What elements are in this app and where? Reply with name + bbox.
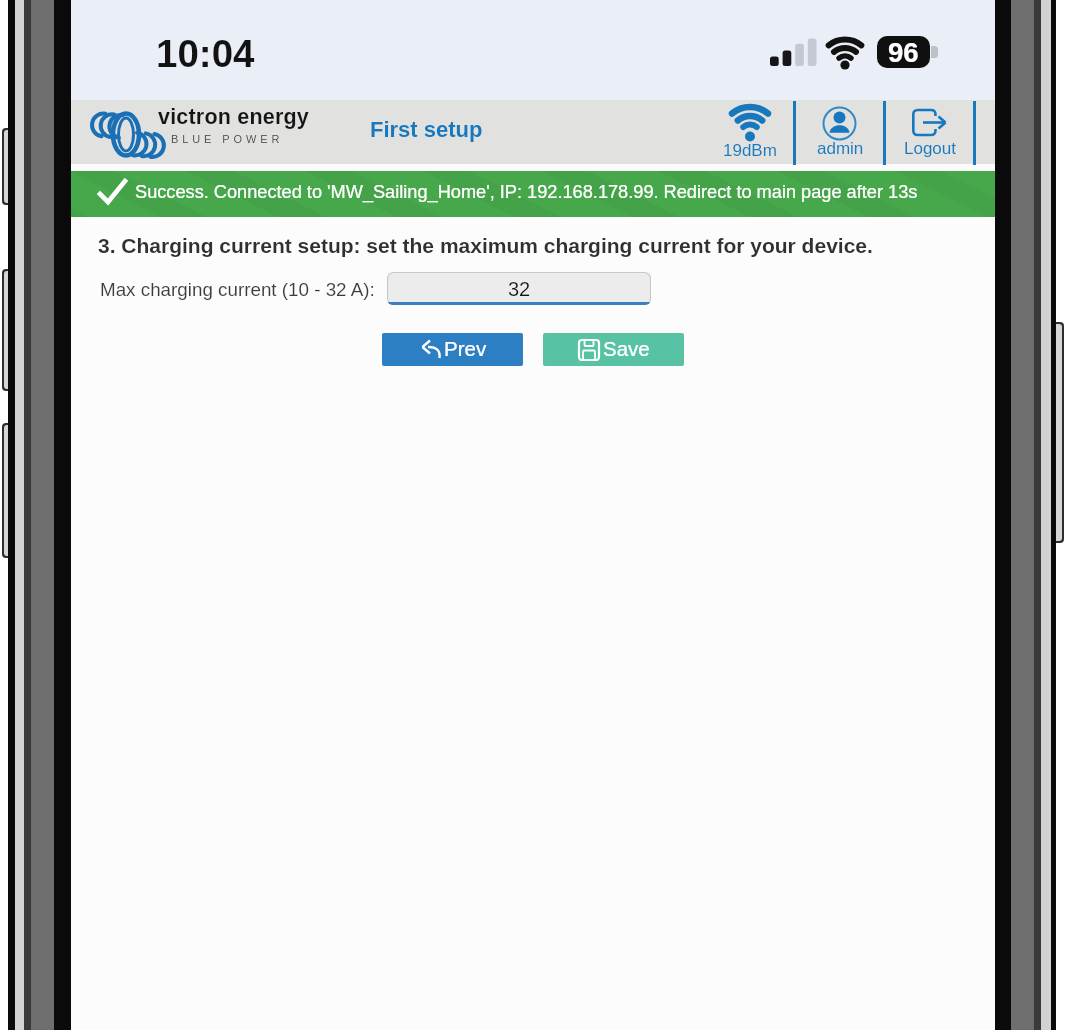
staticText: BLUE POWER (171, 133, 284, 145)
button[interactable] (706, 100, 793, 164)
staticText: Success. Connected to 'MW_Sailing_Home',… (135, 182, 918, 202)
staticText: First setup (370, 117, 483, 142)
button[interactable]: 32 (387, 272, 651, 305)
staticText: 32 (508, 278, 531, 300)
button[interactable]: Save (543, 333, 684, 366)
button[interactable]: Prev (382, 333, 523, 366)
staticText: admin (817, 139, 864, 158)
button[interactable] (797, 100, 883, 164)
staticText: 3. Charging current setup: set the maxim… (98, 234, 873, 257)
staticText: 19dBm (723, 141, 777, 160)
staticText: Max charging current (10 - 32 A): (100, 279, 375, 300)
staticText: victron energy (158, 105, 309, 129)
staticText: Logout (904, 139, 956, 158)
staticText: 10:04 (156, 32, 255, 75)
staticText: Prev (444, 337, 487, 360)
button[interactable] (886, 100, 973, 164)
staticText: 96 (888, 37, 919, 68)
staticText: Save (603, 337, 650, 360)
